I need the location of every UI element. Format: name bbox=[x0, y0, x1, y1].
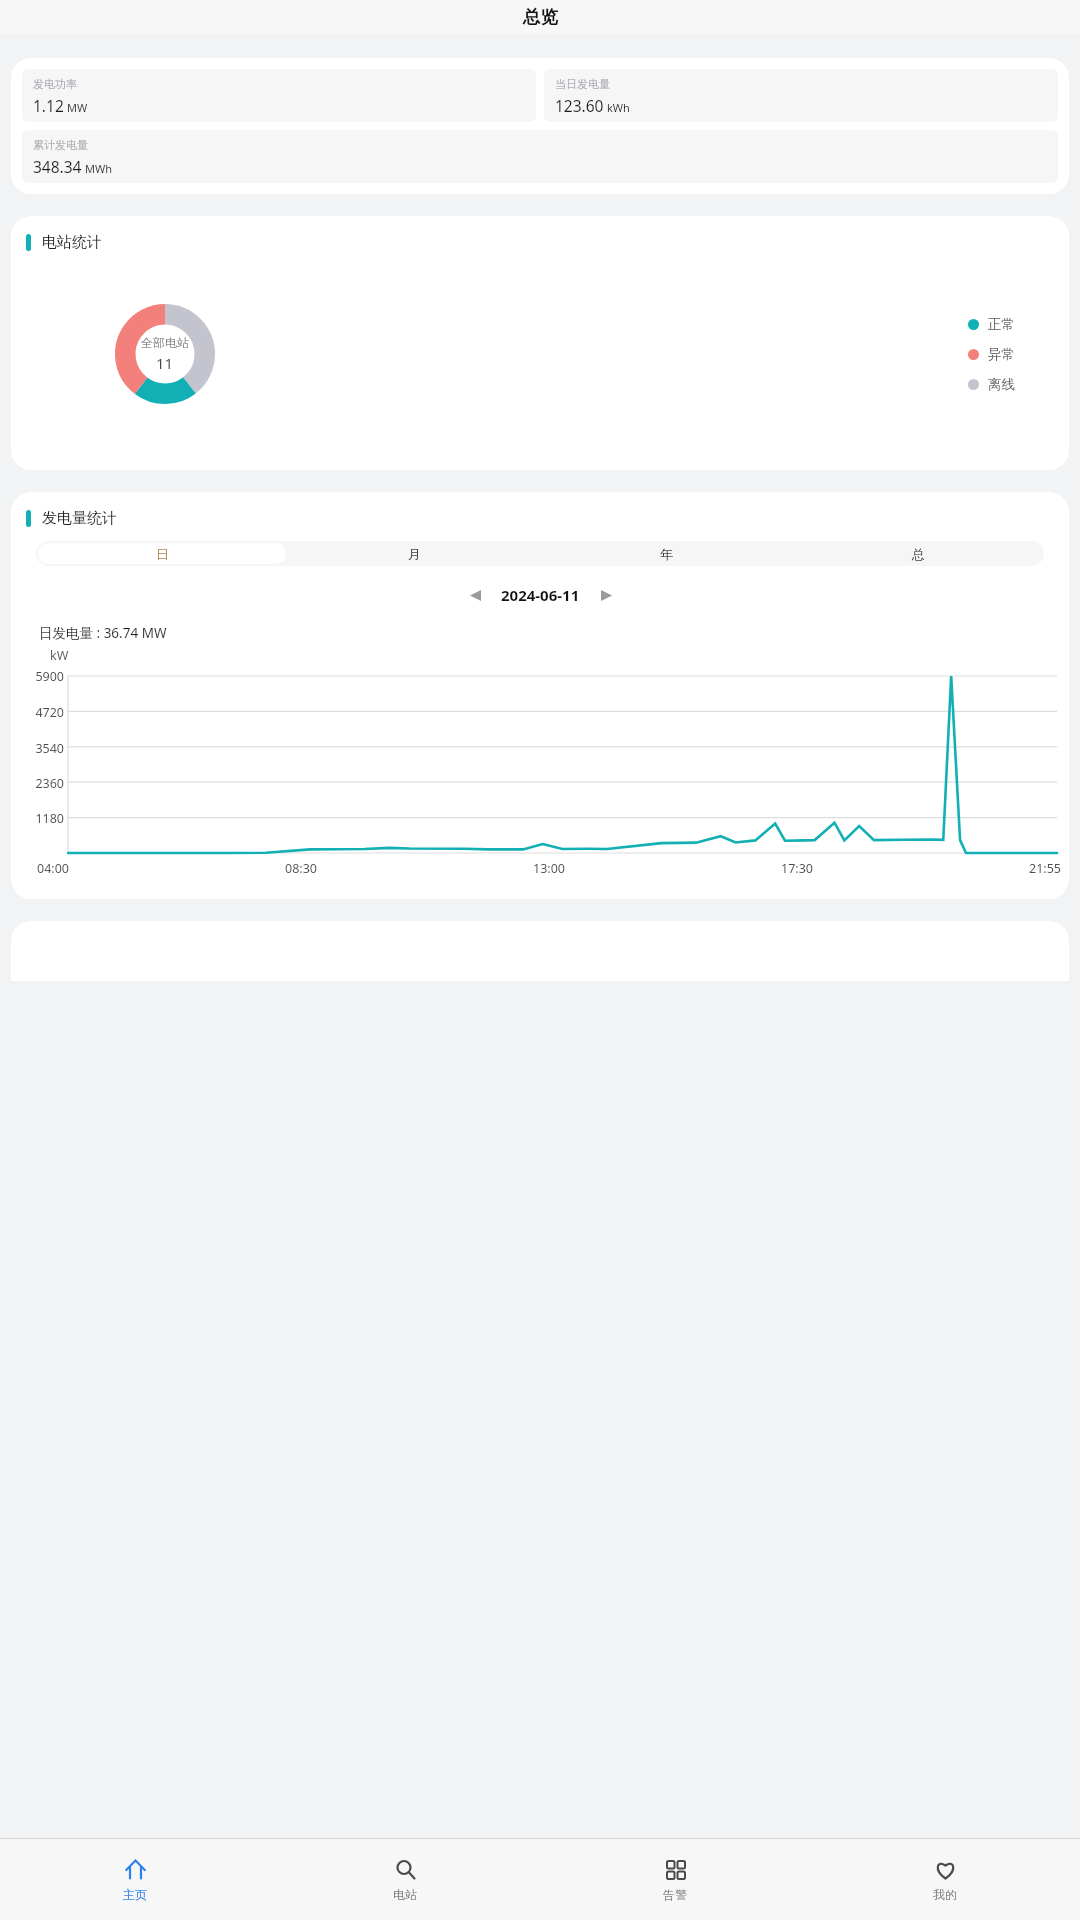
button[interactable]: 离线 bbox=[968, 376, 1015, 393]
staticText: 总 bbox=[912, 546, 925, 562]
staticText: 13:00 bbox=[533, 860, 565, 877]
button[interactable]: 正常 bbox=[968, 316, 1015, 333]
staticText: 我的 bbox=[933, 1887, 957, 1902]
staticText: 2024-06-11 bbox=[501, 585, 580, 605]
staticText: MW bbox=[67, 100, 88, 115]
button[interactable]: 主页 bbox=[0, 1839, 270, 1920]
staticText: 348.34 bbox=[33, 156, 82, 177]
staticText: 月 bbox=[408, 546, 421, 562]
staticText: 日 bbox=[156, 546, 169, 562]
button[interactable]: 累计发电量 bbox=[22, 130, 1058, 183]
staticText: 123.60 bbox=[555, 95, 604, 116]
staticText: 发电量统计 bbox=[42, 509, 117, 528]
staticText: 年 bbox=[660, 546, 673, 562]
button[interactable]: 月 bbox=[290, 543, 538, 564]
staticText: 08:30 bbox=[285, 860, 317, 877]
staticText: kW bbox=[50, 647, 69, 664]
staticText: kWh bbox=[607, 100, 630, 115]
staticText: MWh bbox=[85, 161, 113, 176]
staticText: 04:00 bbox=[37, 860, 69, 877]
staticText: 全部电站 bbox=[141, 335, 189, 350]
staticText: 3540 bbox=[11, 740, 64, 757]
button[interactable]: 日 bbox=[38, 543, 286, 564]
button[interactable]: 当日发电量 bbox=[544, 69, 1058, 122]
button[interactable]: 电站 bbox=[270, 1839, 540, 1920]
staticText: 异常 bbox=[988, 346, 1015, 363]
staticText: 4720 bbox=[11, 704, 64, 721]
button[interactable]: 总 bbox=[794, 543, 1042, 564]
button[interactable]: 我的 bbox=[810, 1839, 1080, 1920]
staticText: 11 bbox=[156, 353, 174, 373]
staticText: 累计发电量 bbox=[33, 138, 88, 152]
staticText: 2360 bbox=[11, 775, 64, 792]
staticText: 日发电量 : 36.74 MW bbox=[39, 624, 167, 642]
staticText: 当日发电量 bbox=[555, 77, 610, 91]
staticText: 21:55 bbox=[1029, 860, 1061, 877]
staticText: 5900 bbox=[11, 668, 64, 685]
staticText: 总览 bbox=[523, 6, 558, 28]
button[interactable]: 年 bbox=[542, 543, 790, 564]
button[interactable]: Previous day bbox=[460, 580, 490, 610]
staticText: 1180 bbox=[11, 810, 64, 827]
staticText: 正常 bbox=[988, 316, 1015, 333]
staticText: 离线 bbox=[988, 376, 1015, 393]
staticText: 1.12 bbox=[33, 95, 64, 116]
button[interactable]: 发电功率 bbox=[22, 69, 536, 122]
staticText: 主页 bbox=[123, 1887, 147, 1902]
staticText: 电站统计 bbox=[42, 233, 102, 252]
staticText: 告警 bbox=[663, 1887, 687, 1902]
staticText: 发电功率 bbox=[33, 77, 77, 91]
button[interactable]: 告警 bbox=[540, 1839, 810, 1920]
button[interactable]: Next day bbox=[591, 580, 621, 610]
button[interactable]: 异常 bbox=[968, 346, 1015, 363]
staticText: 17:30 bbox=[781, 860, 813, 877]
staticText: 电站 bbox=[393, 1887, 417, 1902]
